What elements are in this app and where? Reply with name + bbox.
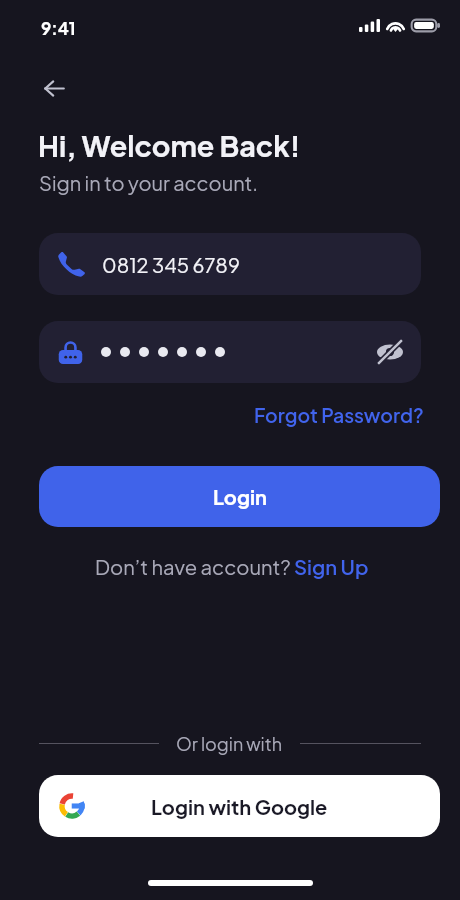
button[interactable]: Don’t have account? Sign Up (90, 550, 374, 583)
staticText: Sign in to your account. (39, 170, 259, 195)
staticText: 9:41 (41, 17, 76, 38)
button[interactable]: 0812 345 6789 (39, 233, 421, 295)
button[interactable]: Login (39, 466, 440, 527)
staticText: Hi, Welcome Back! (38, 127, 301, 163)
staticText: Login with Google (151, 794, 328, 819)
button[interactable]: Forgot Password? (250, 399, 428, 431)
staticText: 0812 345 6789 (102, 252, 240, 277)
button[interactable]: Login with Google (39, 775, 440, 837)
staticText: Login (213, 484, 267, 509)
staticText: Or login with (176, 732, 283, 755)
staticText: Don’t have account? Sign Up (95, 554, 369, 579)
button[interactable]: Show password (39, 321, 421, 383)
button[interactable]: Show password (373, 335, 407, 369)
button[interactable]: Back (32, 66, 76, 110)
staticText: Forgot Password? (254, 403, 424, 427)
